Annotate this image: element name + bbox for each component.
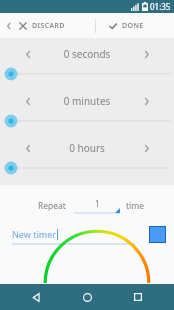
- staticText: DISCARD: [32, 21, 65, 31]
- staticText: 0 seconds: [36, 47, 138, 61]
- button[interactable]: Decrease 0 minutes: [20, 93, 36, 109]
- staticText: 0 hours: [36, 141, 138, 155]
- button[interactable]: [0, 161, 174, 175]
- button[interactable]: Recent apps: [123, 284, 153, 310]
- button[interactable]: [0, 67, 174, 81]
- button[interactable]: Increase 0 minutes: [138, 93, 154, 109]
- staticText: time: [126, 200, 145, 212]
- button[interactable]: Decrease 0 seconds: [20, 46, 36, 62]
- button[interactable]: DONE: [96, 13, 174, 38]
- staticText: 1: [95, 198, 100, 210]
- button[interactable]: [0, 114, 174, 128]
- staticText: 01:35: [150, 1, 171, 12]
- button[interactable]: DISCARD: [18, 13, 95, 38]
- button[interactable]: Back: [0, 13, 18, 38]
- staticText: New timer: [12, 228, 56, 240]
- button[interactable]: Home: [72, 284, 102, 310]
- button[interactable]: Increase 0 hours: [138, 140, 154, 156]
- button[interactable]: Pick color: [149, 226, 166, 243]
- staticText: Repeat: [38, 200, 66, 212]
- button[interactable]: Back: [21, 284, 51, 310]
- button[interactable]: New timer: [12, 223, 141, 245]
- staticText: 0 minutes: [36, 94, 138, 108]
- staticText: DONE: [122, 21, 144, 31]
- button[interactable]: Increase 0 seconds: [138, 46, 154, 62]
- button[interactable]: 1: [74, 197, 120, 215]
- button[interactable]: Decrease 0 hours: [20, 140, 36, 156]
